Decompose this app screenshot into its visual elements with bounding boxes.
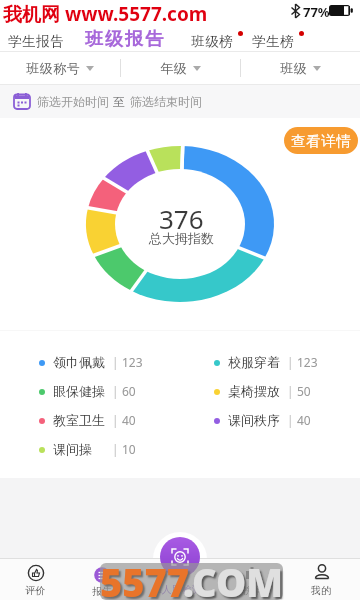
staticText: 年级 xyxy=(160,60,187,76)
staticText: 报告 xyxy=(92,585,112,598)
staticText: 课间秩序 xyxy=(228,412,280,428)
staticText: 60 xyxy=(122,383,136,399)
staticText: 至 xyxy=(113,94,125,109)
staticText: 班级 xyxy=(280,60,307,76)
button[interactable]: 教室卫生 xyxy=(39,412,169,429)
button[interactable]: 年级 xyxy=(121,52,240,84)
staticText: 10 xyxy=(122,441,136,457)
staticText: 5577 xyxy=(100,556,190,600)
button[interactable]: 评价 xyxy=(8,560,64,600)
staticText: 总大拇指数 xyxy=(149,230,214,246)
staticText: 教室卫生 xyxy=(53,412,105,428)
staticText: | xyxy=(112,383,119,399)
staticText: 榜单 xyxy=(242,584,262,597)
staticText: 领巾佩戴 xyxy=(53,354,105,370)
staticText: | xyxy=(112,441,119,457)
staticText: 课间操 xyxy=(53,441,92,457)
staticText: | xyxy=(112,412,119,428)
button[interactable]: 课间操 xyxy=(39,441,169,458)
staticText: 50 xyxy=(297,383,311,399)
staticText: 77% xyxy=(303,3,330,21)
staticText: | xyxy=(287,354,294,370)
button[interactable]: 学生榜 xyxy=(251,25,309,51)
staticText: 123 xyxy=(297,354,318,370)
button[interactable]: 班级报告 xyxy=(82,25,190,51)
staticText: 评价 xyxy=(25,584,45,597)
staticText: 学生报告 xyxy=(8,33,64,50)
button[interactable]: 校服穿着 xyxy=(214,354,344,371)
staticText: | xyxy=(287,412,294,428)
button[interactable]: 学生报告 xyxy=(0,25,82,51)
button[interactable]: 报告 xyxy=(74,560,130,600)
staticText: | xyxy=(287,383,294,399)
staticText: 学生榜 xyxy=(252,33,294,50)
staticText: 筛选开始时间 xyxy=(37,94,109,109)
staticText: 班级称号 xyxy=(26,60,80,76)
button[interactable]: 榜单 xyxy=(224,560,280,600)
staticText: 376 xyxy=(159,201,204,231)
staticText: 40 xyxy=(297,412,311,428)
staticText: 123 xyxy=(122,354,143,370)
button[interactable]: 课间秩序 xyxy=(214,412,344,429)
button[interactable]: 领巾佩戴 xyxy=(39,354,169,371)
staticText: 班级报告 xyxy=(84,28,164,51)
staticText: 筛选结束时间 xyxy=(130,94,202,109)
staticText: .COM xyxy=(183,556,284,600)
button[interactable]: 桌椅摆放 xyxy=(214,383,344,400)
staticText: 班级榜 xyxy=(191,33,233,50)
staticText: | xyxy=(112,354,119,370)
button[interactable] xyxy=(160,537,200,577)
staticText: 校服穿着 xyxy=(228,354,280,370)
button[interactable]: 班级 xyxy=(241,52,360,84)
button[interactable]: 筛选开始时间 xyxy=(0,85,360,118)
button[interactable]: 查看详情 xyxy=(284,127,358,154)
staticText: 眼保健操 xyxy=(53,383,105,399)
staticText: 我的 xyxy=(311,584,331,597)
staticText: AI人脸检测 xyxy=(152,582,202,596)
button[interactable]: 班级榜 xyxy=(190,25,248,51)
staticText: 我机网 www.5577.com xyxy=(3,1,208,27)
button[interactable]: 我的 xyxy=(294,560,350,600)
staticText: 查看详情 xyxy=(291,132,351,150)
staticText: 40 xyxy=(122,412,136,428)
button[interactable]: 眼保健操 xyxy=(39,383,169,400)
button[interactable]: 班级称号 xyxy=(0,52,120,84)
staticText: 桌椅摆放 xyxy=(228,383,280,399)
